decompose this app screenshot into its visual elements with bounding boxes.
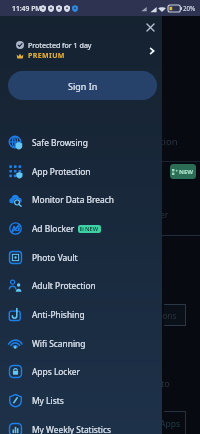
- staticText: PREMIUM: [28, 51, 65, 61]
- button[interactable]: Wifi Scanning: [0, 329, 162, 358]
- button[interactable]: Close drawer: [144, 21, 157, 34]
- button[interactable]: Photo Vault: [0, 243, 162, 272]
- staticText: Ad Blocker: [32, 223, 75, 234]
- button[interactable]: Protected for 1 day: [0, 34, 162, 66]
- staticText: My Weekly Statistics: [32, 424, 112, 434]
- staticText: Apps Locker: [32, 366, 81, 377]
- button[interactable]: My Weekly Statistics: [0, 415, 162, 434]
- button[interactable]: Monitor Data Breach: [0, 185, 162, 214]
- staticText: to: [161, 377, 170, 389]
- staticText: Sign In: [68, 80, 98, 92]
- staticText: Monitor Data Breach: [32, 194, 114, 205]
- button[interactable]: App Protection: [0, 157, 162, 186]
- staticText: App Protection: [32, 166, 91, 177]
- staticText: NEW: [85, 225, 99, 233]
- staticText: My Lists: [32, 395, 64, 406]
- staticText: Wifi Scanning: [32, 338, 86, 349]
- button[interactable]: Apps Locker: [0, 357, 162, 386]
- staticText: Anti-Phishing: [32, 309, 85, 320]
- button[interactable]: My Lists: [0, 386, 162, 415]
- button[interactable]: Anti-Phishing: [0, 300, 162, 329]
- staticText: Safe Browsing: [32, 137, 88, 148]
- button[interactable]: Ad Blocker: [0, 214, 162, 243]
- staticText: 11:49 PM: [12, 4, 42, 13]
- staticText: ions: [160, 310, 177, 322]
- staticText: Protected for 1 day: [28, 40, 92, 50]
- staticText: Apps: [160, 418, 180, 430]
- staticText: NEW: [179, 168, 194, 176]
- button[interactable]: Safe Browsing: [0, 128, 162, 157]
- staticText: tion: [160, 135, 178, 148]
- staticText: er: [160, 209, 169, 221]
- button[interactable]: Sign In: [8, 71, 157, 100]
- staticText: Photo Vault: [32, 252, 78, 263]
- button[interactable]: Adult Protection: [0, 271, 162, 300]
- button[interactable]: Premium details: [145, 44, 158, 57]
- staticText: Adult Protection: [32, 280, 96, 291]
- staticText: 20%: [183, 4, 196, 12]
